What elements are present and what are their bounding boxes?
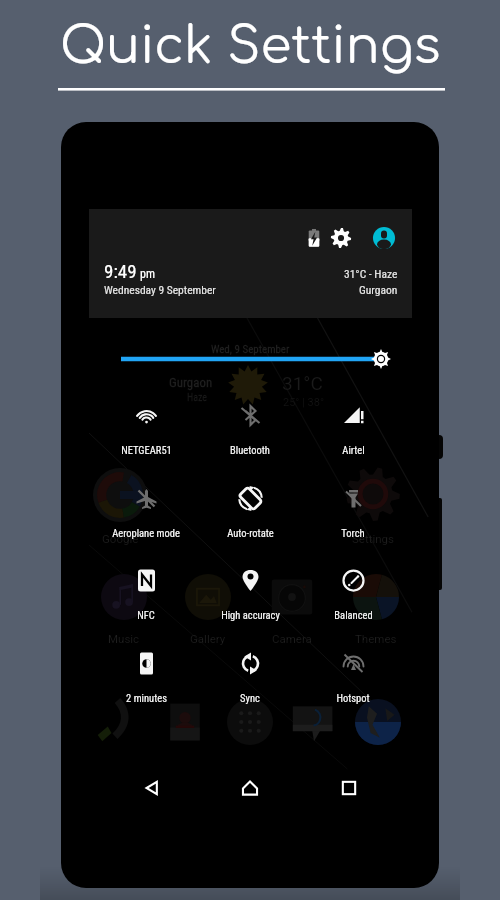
button[interactable]: User profile bbox=[372, 226, 396, 250]
staticText: pm bbox=[140, 267, 155, 281]
button[interactable]: High accuracy bbox=[199, 567, 301, 625]
button[interactable]: NFC bbox=[95, 567, 197, 625]
button[interactable]: Bluetooth bbox=[199, 402, 301, 460]
staticText: 31°C bbox=[282, 372, 323, 394]
button[interactable]: Airtel bbox=[302, 402, 404, 460]
staticText: NFC bbox=[137, 609, 155, 621]
staticText: Gurgaon bbox=[169, 375, 213, 390]
staticText: Haze bbox=[187, 392, 207, 404]
button[interactable]: Aeroplane mode bbox=[95, 485, 197, 543]
button[interactable]: Torch bbox=[302, 485, 404, 543]
staticText: Settings bbox=[352, 532, 394, 545]
button[interactable]: Battery charging bbox=[303, 227, 325, 249]
staticText: 25° | 38° bbox=[283, 396, 325, 409]
staticText: Auto-rotate bbox=[227, 527, 274, 539]
staticText: Camera bbox=[272, 632, 312, 645]
staticText: Wed, 9 September bbox=[211, 343, 290, 356]
button[interactable]: Home bbox=[239, 777, 261, 799]
staticText: Hotspot bbox=[336, 692, 370, 704]
staticText: Music bbox=[108, 632, 140, 645]
staticText: Aeroplane mode bbox=[112, 527, 180, 539]
staticText: Balanced bbox=[334, 609, 373, 621]
button[interactable]: Hotspot bbox=[302, 650, 404, 708]
button[interactable]: Back bbox=[141, 777, 163, 799]
button[interactable]: Settings bbox=[330, 227, 352, 249]
staticText: Themes bbox=[355, 632, 397, 645]
staticText: 31°C - Haze bbox=[344, 267, 398, 280]
staticText: Wednesday 9 September bbox=[104, 283, 216, 296]
button[interactable]: Balanced bbox=[302, 567, 404, 625]
staticText: Sync bbox=[240, 692, 260, 704]
staticText: Airtel bbox=[342, 444, 365, 456]
button[interactable]: NETGEAR51 bbox=[95, 402, 197, 460]
button[interactable]: Auto-rotate bbox=[199, 485, 301, 543]
staticText: 9:49 bbox=[104, 260, 137, 282]
staticText: Gallery bbox=[190, 632, 226, 645]
button[interactable]: Recents bbox=[338, 777, 360, 799]
staticText: Gurgaon bbox=[359, 283, 398, 296]
staticText: High accuracy bbox=[221, 609, 280, 621]
button[interactable]: Brightness bbox=[89, 344, 412, 374]
staticText: 2 minutes bbox=[126, 692, 167, 704]
staticText: Torch bbox=[341, 527, 365, 539]
staticText: NETGEAR51 bbox=[121, 444, 172, 456]
staticText: Bluetooth bbox=[230, 444, 270, 456]
button[interactable]: Sync bbox=[199, 650, 301, 708]
staticText: Google bbox=[102, 532, 139, 545]
staticText: Quick Settings bbox=[60, 19, 441, 75]
button[interactable]: 2 minutes bbox=[95, 650, 197, 708]
